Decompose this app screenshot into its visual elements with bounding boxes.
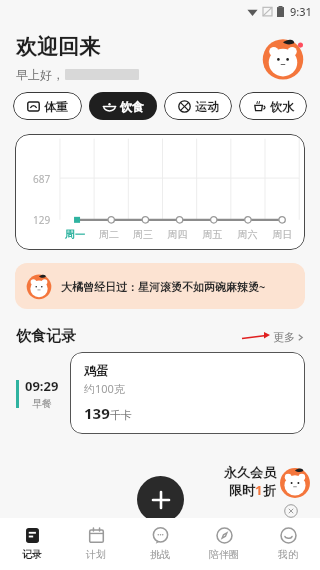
button[interactable]: Add record: [137, 476, 184, 523]
staticText: 687: [33, 172, 51, 186]
staticText: 129: [33, 213, 51, 227]
staticText: 周四: [160, 228, 195, 241]
staticText: 周二: [92, 228, 126, 241]
button[interactable]: 饮水: [239, 92, 307, 120]
staticText: 周六: [230, 228, 265, 241]
button[interactable]: 挑战: [128, 518, 192, 570]
staticText: 1: [255, 481, 263, 499]
staticText: 周五: [195, 228, 230, 241]
staticText: 早餐: [32, 397, 52, 410]
button[interactable]: 更多: [273, 330, 304, 344]
staticText: 约100克: [84, 381, 125, 396]
staticText: 周三: [126, 228, 160, 241]
button[interactable]: 饮食: [89, 92, 157, 120]
staticText: 体重: [44, 99, 68, 114]
button[interactable]: 体重: [13, 92, 82, 120]
button[interactable]: 大橘曾经日过：星河滚烫不如两碗麻辣烫~: [15, 263, 305, 309]
button[interactable]: 永久会员: [224, 464, 312, 499]
staticText: 大橘曾经日过：星河滚烫不如两碗麻辣烫~: [61, 279, 266, 294]
staticText: 陪伴圈: [209, 548, 239, 561]
button[interactable]: 鸡蛋: [70, 352, 305, 434]
staticText: 折: [263, 482, 276, 498]
staticText: 周日: [265, 228, 300, 241]
staticText: 周一: [58, 228, 92, 241]
button[interactable]: Profile avatar: [260, 35, 306, 81]
staticText: 鸡蛋: [84, 363, 108, 378]
staticText: 挑战: [150, 548, 170, 561]
staticText: 记录: [22, 548, 42, 561]
button[interactable]: 687: [15, 134, 305, 250]
button[interactable]: 计划: [64, 518, 128, 570]
button[interactable]: 记录: [0, 518, 64, 570]
staticText: 永久会员: [224, 464, 276, 480]
staticText: 09:29: [25, 377, 59, 395]
staticText: 饮食: [120, 99, 144, 114]
staticText: 更多: [273, 330, 295, 344]
staticText: 运动: [195, 99, 219, 114]
staticText: 饮水: [270, 99, 294, 114]
staticText: 千卡: [110, 408, 132, 422]
staticText: 早上好，: [16, 67, 64, 82]
staticText: 我的: [278, 548, 298, 561]
staticText: 计划: [86, 548, 106, 561]
button[interactable]: 陪伴圈: [192, 518, 256, 570]
button[interactable]: 我的: [256, 518, 320, 570]
staticText: 9:31: [290, 4, 312, 19]
staticText: 139: [84, 403, 110, 423]
staticText: 限时: [229, 482, 255, 498]
button[interactable]: Close promotion: [284, 504, 298, 518]
button[interactable]: 运动: [164, 92, 232, 120]
staticText: 欢迎回来: [16, 34, 100, 60]
staticText: 饮食记录: [16, 327, 76, 346]
